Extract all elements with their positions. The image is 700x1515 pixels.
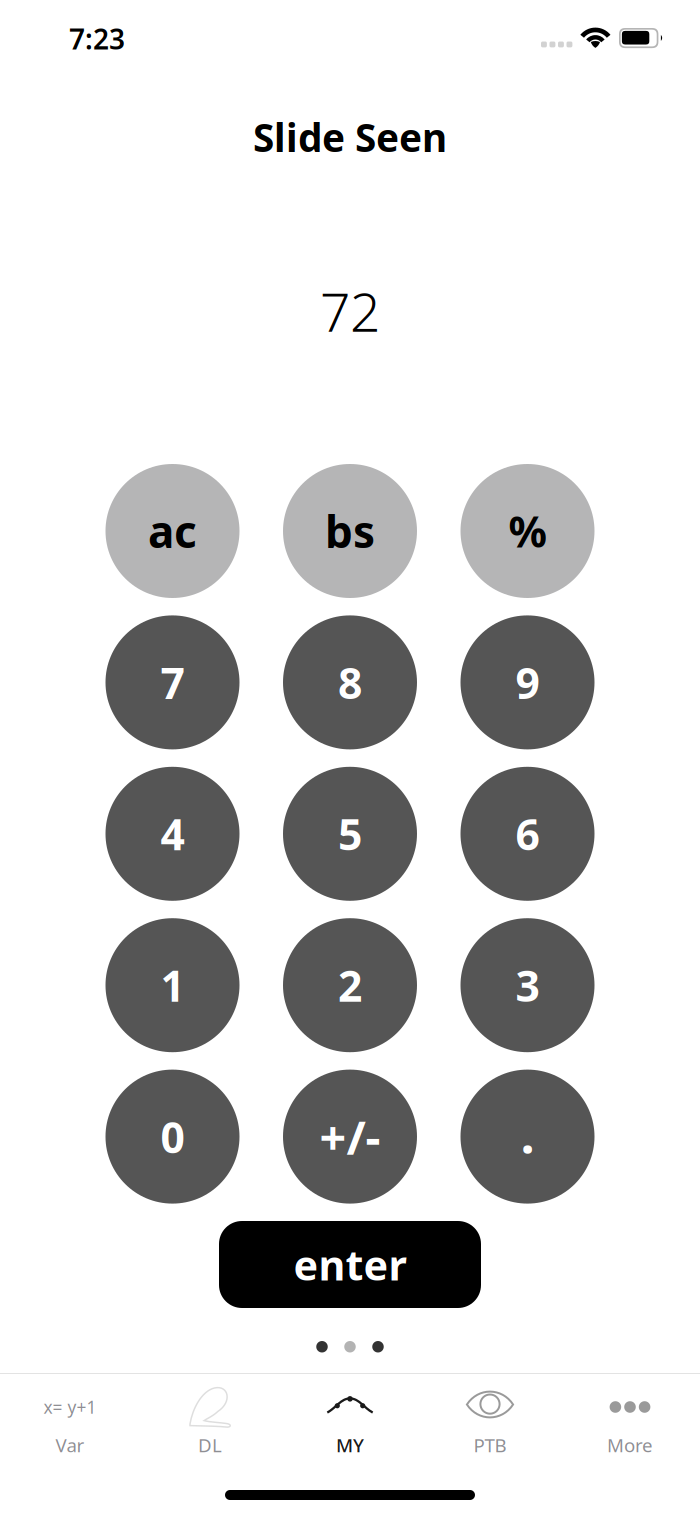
button[interactable]: x= y+1 <box>0 1374 140 1474</box>
staticText: MY <box>336 1433 364 1457</box>
staticText: 72 <box>320 276 380 346</box>
button[interactable]: 6 <box>460 767 594 901</box>
staticText: 9 <box>515 654 539 711</box>
button[interactable]: 0 <box>105 1070 239 1204</box>
button[interactable]: +/- <box>283 1070 417 1204</box>
staticText: 6 <box>515 805 539 862</box>
button[interactable]: 7 <box>105 615 239 749</box>
staticText: 0 <box>160 1108 184 1165</box>
staticText: 7:23 <box>69 20 125 57</box>
staticText: 4 <box>160 805 184 862</box>
staticText: 3 <box>515 957 539 1014</box>
staticText: 5 <box>338 805 362 862</box>
staticText: ac <box>148 502 197 560</box>
staticText: Slide Seen <box>253 111 447 163</box>
button[interactable]: % <box>460 464 594 598</box>
button[interactable]: 8 <box>283 615 417 749</box>
staticText: 2 <box>338 957 362 1014</box>
staticText: More <box>607 1433 653 1457</box>
button[interactable]: 1 <box>105 918 239 1052</box>
staticText: Var <box>55 1433 84 1457</box>
button[interactable]: PTB <box>420 1374 560 1474</box>
button[interactable]: . <box>460 1070 594 1204</box>
staticText: 8 <box>338 654 362 711</box>
button[interactable]: MY <box>280 1374 420 1474</box>
staticText: 7 <box>160 654 184 711</box>
staticText: PTB <box>473 1433 506 1457</box>
button[interactable]: bs <box>283 464 417 598</box>
button[interactable]: More <box>560 1374 700 1474</box>
button[interactable]: DL <box>140 1374 280 1474</box>
staticText: DL <box>198 1433 222 1457</box>
staticText: 1 <box>160 957 184 1014</box>
button[interactable]: 2 <box>283 918 417 1052</box>
button[interactable]: 9 <box>460 615 594 749</box>
button[interactable]: 4 <box>105 767 239 901</box>
button[interactable]: enter <box>219 1221 481 1308</box>
staticText: x= y+1 <box>43 1395 96 1418</box>
staticText: % <box>508 503 546 559</box>
button[interactable]: ac <box>105 464 239 598</box>
staticText: enter <box>293 1237 406 1292</box>
staticText: +/- <box>319 1106 380 1168</box>
button[interactable]: 5 <box>283 767 417 901</box>
staticText: . <box>520 1100 534 1167</box>
button[interactable]: 3 <box>460 918 594 1052</box>
staticText: bs <box>325 502 375 560</box>
